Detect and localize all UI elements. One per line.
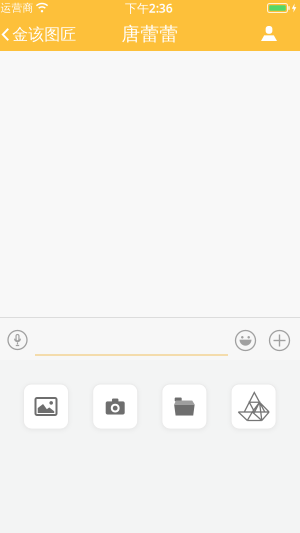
button[interactable] xyxy=(35,327,228,357)
button[interactable] xyxy=(261,26,277,41)
button[interactable] xyxy=(231,384,276,429)
staticText: 金该图匠 xyxy=(12,25,76,44)
button[interactable] xyxy=(8,330,27,349)
button[interactable] xyxy=(235,330,255,350)
button[interactable] xyxy=(23,384,68,429)
staticText: 唐蕾蕾 xyxy=(121,22,178,45)
button[interactable] xyxy=(269,330,289,350)
button[interactable] xyxy=(162,384,207,429)
button[interactable] xyxy=(93,384,138,429)
button[interactable]: 金该图匠 xyxy=(3,25,76,44)
staticText: 运营商 xyxy=(0,1,33,14)
staticText: 下午2:36 xyxy=(125,0,173,16)
